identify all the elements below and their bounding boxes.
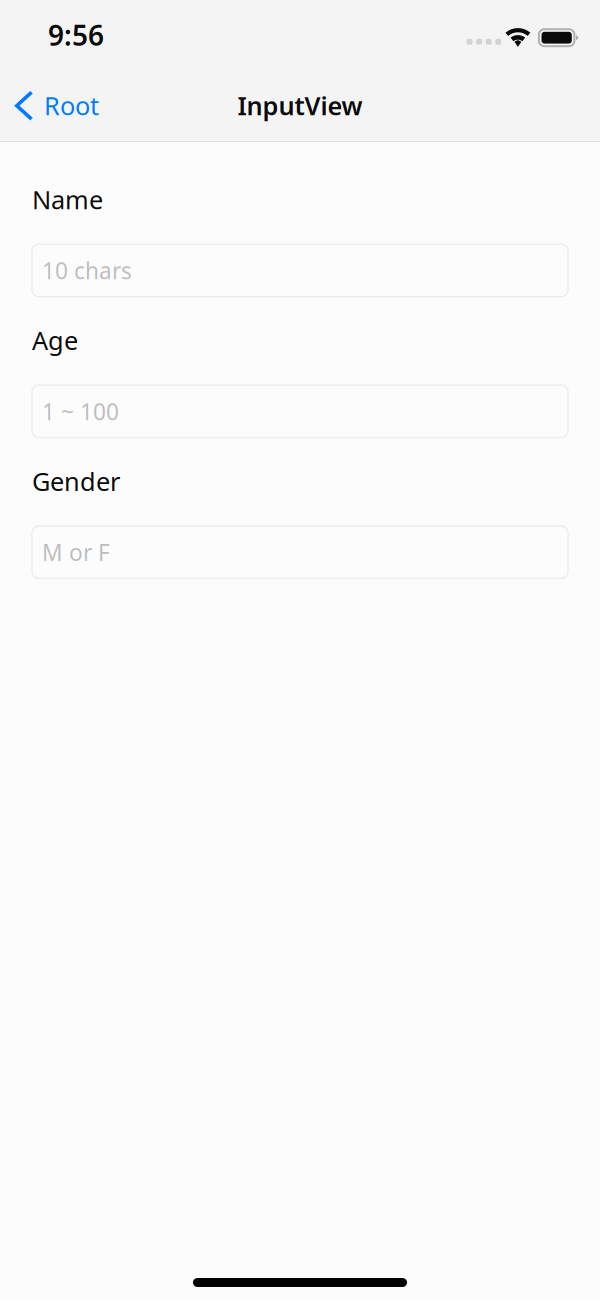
staticText: InputView [237, 89, 362, 122]
staticText: Root [44, 89, 99, 122]
button[interactable]: Age [32, 385, 568, 438]
button[interactable]: Back to Root [0, 83, 109, 128]
staticText: M or F [42, 537, 110, 567]
staticText: Name [32, 183, 103, 216]
button[interactable]: Name [32, 244, 568, 297]
staticText: Age [32, 323, 78, 357]
staticText: 10 chars [42, 255, 132, 285]
staticText: 1 ~ 100 [42, 396, 119, 426]
button[interactable]: Gender [32, 526, 568, 578]
staticText: 9:56 [48, 16, 104, 54]
staticText: Gender [32, 464, 120, 498]
